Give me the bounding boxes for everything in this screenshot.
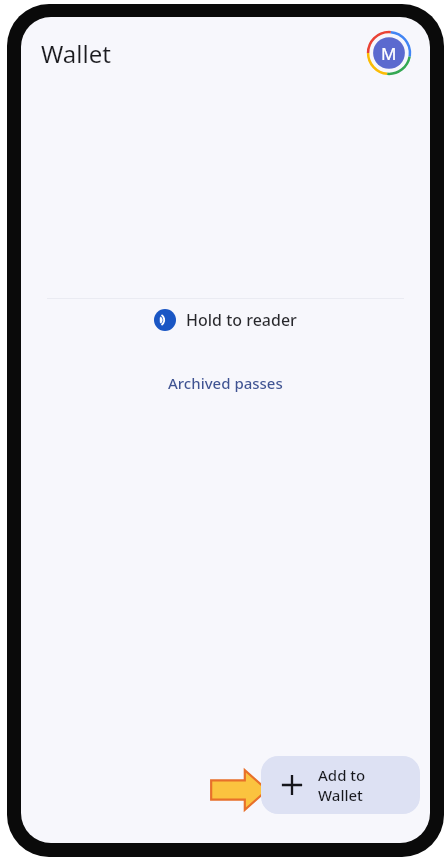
staticText: Wallet bbox=[41, 37, 111, 70]
button[interactable]: Account bbox=[366, 30, 412, 76]
button[interactable]: Archived passes bbox=[156, 367, 295, 399]
button[interactable]: Hold to reader bbox=[144, 303, 307, 337]
staticText: Add to Wallet bbox=[318, 765, 402, 805]
staticText: Archived passes bbox=[168, 373, 283, 393]
staticText: Hold to reader bbox=[186, 309, 297, 331]
button[interactable]: Add to Wallet bbox=[261, 756, 420, 814]
staticText: M bbox=[381, 42, 397, 65]
